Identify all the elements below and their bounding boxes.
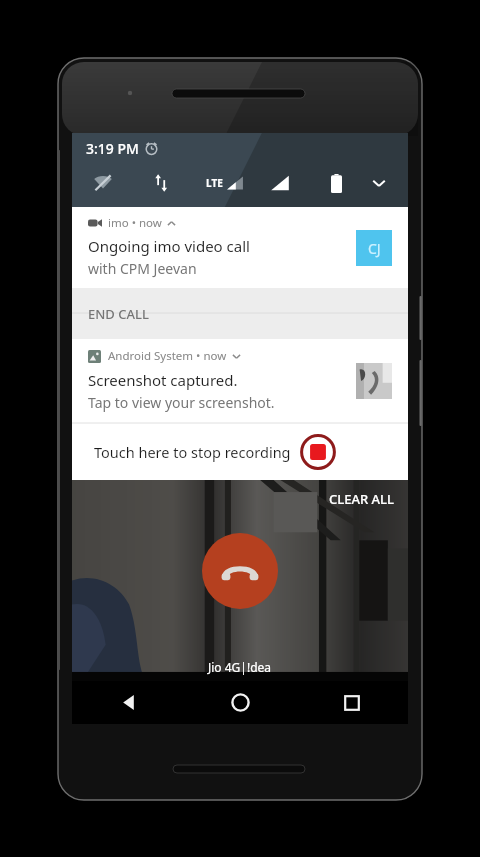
staticText: Tap to view your screenshot. xyxy=(88,393,275,412)
staticText: Android System • now xyxy=(108,348,227,364)
staticText: Touch here to stop recording xyxy=(94,442,291,462)
button[interactable]: Signal strength xyxy=(270,173,290,193)
button[interactable]: End call xyxy=(202,533,278,609)
button[interactable]: imo • now xyxy=(72,207,408,288)
button[interactable]: Android System • now xyxy=(72,339,408,423)
button[interactable]: Recent apps xyxy=(296,681,408,724)
button[interactable]: Wi-Fi off xyxy=(88,168,118,198)
button[interactable]: Mobile data xyxy=(146,168,176,198)
staticText: Screenshot captured. xyxy=(88,370,238,390)
button[interactable]: Battery xyxy=(322,169,350,197)
button[interactable]: LTE signal xyxy=(206,174,244,192)
button[interactable]: END CALL xyxy=(72,288,408,339)
staticText: LTE xyxy=(206,176,223,190)
staticText: with CPM Jeevan xyxy=(88,259,197,278)
button[interactable]: Touch here to stop recording xyxy=(72,423,408,480)
staticText: Ongoing imo video call xyxy=(88,236,250,256)
button[interactable]: CLEAR ALL xyxy=(315,480,408,518)
button[interactable]: Expand quick settings xyxy=(364,168,394,198)
staticText: imo • now xyxy=(108,215,162,231)
button[interactable]: Back xyxy=(72,681,184,724)
button[interactable]: Home xyxy=(184,681,296,724)
staticText: 3:19 PM xyxy=(86,139,139,158)
staticText: END CALL xyxy=(88,305,149,323)
staticText: Jio 4G|!dea xyxy=(208,659,272,675)
staticText: CJ xyxy=(368,239,381,258)
